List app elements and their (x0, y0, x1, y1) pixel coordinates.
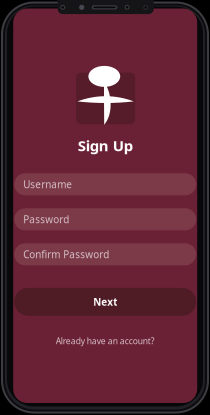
staticText: Sign Up (78, 135, 133, 156)
button[interactable]: Password (14, 208, 196, 230)
button[interactable]: Already have an account? (13, 334, 197, 348)
staticText: Next (93, 295, 117, 308)
staticText: Username (23, 178, 72, 191)
staticText: Confirm Password (23, 248, 109, 261)
button[interactable]: Username (14, 173, 196, 195)
staticText: Password (23, 213, 69, 226)
button[interactable]: Next (14, 288, 196, 316)
staticText: Already have an account? (56, 335, 155, 347)
button[interactable]: Confirm Password (14, 243, 196, 265)
